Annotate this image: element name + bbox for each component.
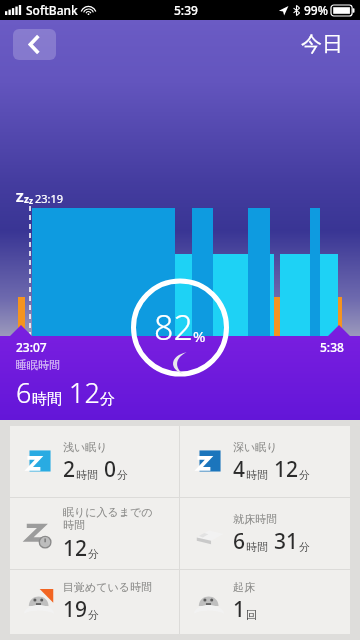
staticText: 82	[154, 304, 193, 350]
button[interactable]: 今日	[297, 27, 347, 61]
staticText: Z	[16, 188, 24, 206]
staticText: 時間	[246, 468, 268, 482]
button[interactable]: 就床時間	[180, 498, 350, 569]
staticText: 時間	[246, 540, 268, 554]
staticText: 5:38	[320, 339, 344, 355]
staticText: 12	[274, 455, 299, 484]
staticText: 分	[88, 547, 99, 561]
button[interactable]: Back	[13, 29, 56, 60]
staticText: 5:39	[174, 2, 198, 18]
button[interactable]: 目覚めている時間	[10, 570, 179, 634]
staticText: SoftBank	[26, 2, 78, 18]
staticText: 浅い眠り	[63, 440, 108, 454]
staticText: z	[29, 195, 33, 206]
staticText: 分	[100, 390, 115, 409]
button[interactable]: 起床	[180, 570, 350, 634]
staticText: 分	[299, 468, 310, 482]
staticText: %	[193, 326, 206, 346]
staticText: 2	[63, 455, 76, 484]
staticText: z	[24, 192, 29, 206]
staticText: 12	[69, 374, 100, 411]
staticText: 分	[88, 608, 99, 622]
staticText: 6	[16, 374, 32, 411]
staticText: 深い眠り	[233, 440, 278, 454]
staticText: 目覚めている時間	[63, 580, 153, 594]
button[interactable]: 浅い眠り	[10, 426, 179, 497]
staticText: 今日	[301, 31, 343, 57]
staticText: 起床	[233, 580, 255, 594]
staticText: 31	[274, 527, 299, 556]
staticText: 回	[246, 608, 257, 622]
staticText: 0	[104, 455, 117, 484]
staticText: 23:07	[16, 339, 47, 355]
staticText: 6	[233, 527, 246, 556]
staticText: 分	[117, 468, 128, 482]
staticText: 23:19	[35, 191, 64, 206]
staticText: 眠りに入るまでの 時間	[63, 505, 153, 533]
staticText: 19	[63, 595, 88, 624]
staticText: 1	[233, 595, 246, 624]
staticText: 分	[299, 540, 310, 554]
staticText: 時間	[76, 468, 98, 482]
staticText: 12	[63, 534, 88, 563]
staticText: 就床時間	[233, 512, 277, 526]
staticText: 99%	[304, 2, 328, 18]
staticText: 時間	[32, 390, 62, 409]
staticText: 睡眠時間	[16, 358, 60, 372]
button[interactable]: 深い眠り	[180, 426, 350, 497]
staticText: 4	[233, 455, 246, 484]
button[interactable]: 眠りに入るまでの 時間	[10, 498, 179, 569]
